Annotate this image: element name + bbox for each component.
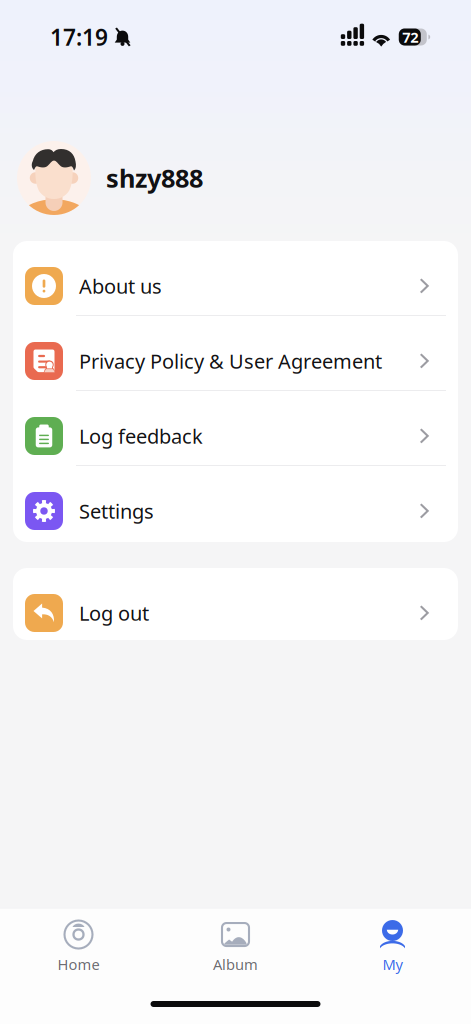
button[interactable]: Log feedback: [13, 391, 458, 466]
staticText: shzy888: [106, 161, 203, 195]
staticText: 72: [402, 27, 418, 47]
button[interactable]: My: [314, 908, 471, 988]
staticText: Settings: [79, 498, 154, 524]
button[interactable]: Home: [0, 908, 157, 988]
staticText: Album: [213, 954, 258, 974]
button[interactable]: Log out: [13, 568, 458, 640]
staticText: 17:19: [50, 22, 108, 52]
button[interactable]: Privacy Policy & User Agreement: [13, 316, 458, 391]
staticText: Privacy Policy & User Agreement: [79, 348, 382, 374]
staticText: Log feedback: [79, 423, 203, 449]
staticText: Home: [57, 954, 99, 974]
staticText: Log out: [79, 600, 149, 626]
staticText: My: [382, 954, 402, 974]
staticText: About us: [79, 273, 162, 299]
button[interactable]: Album: [157, 908, 314, 988]
button[interactable]: Settings: [13, 466, 458, 542]
button[interactable]: About us: [13, 241, 458, 316]
